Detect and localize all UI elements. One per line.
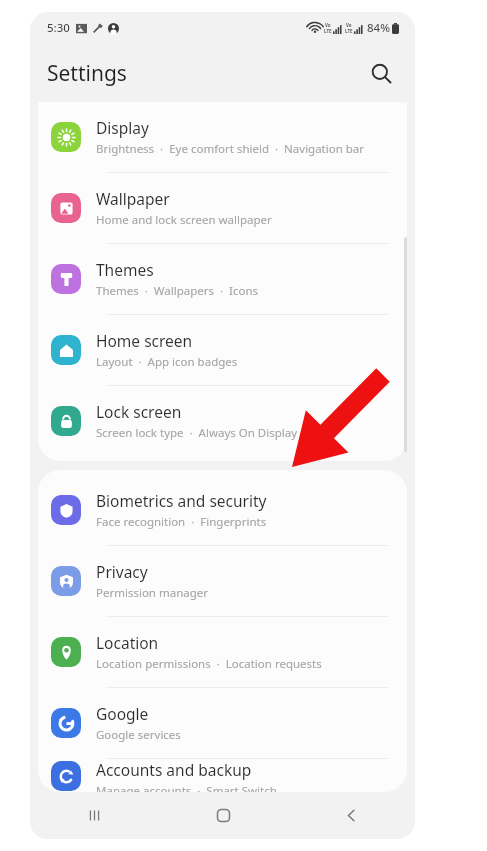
button[interactable]: Display bbox=[38, 102, 407, 172]
button[interactable]: Location bbox=[38, 617, 407, 687]
button[interactable]: Home screen bbox=[38, 315, 407, 385]
staticText: Location bbox=[96, 632, 159, 653]
staticText: Display bbox=[96, 117, 149, 138]
staticText: Privacy bbox=[96, 561, 148, 582]
button[interactable]: Back bbox=[287, 792, 415, 839]
staticText: Google bbox=[96, 703, 149, 724]
staticText: LTE bbox=[345, 28, 353, 34]
staticText: Manage accounts · Smart Switch bbox=[96, 783, 277, 792]
button[interactable]: Recents bbox=[30, 792, 159, 839]
staticText: Face recognition · Fingerprints bbox=[96, 514, 267, 530]
button[interactable]: Search bbox=[361, 53, 401, 93]
staticText: Home screen bbox=[96, 330, 193, 351]
staticText: Brightness · Eye comfort shield · Naviga… bbox=[96, 141, 365, 157]
staticText: Biometrics and security bbox=[96, 490, 267, 511]
staticText: Screen lock type · Always On Display bbox=[96, 425, 298, 441]
staticText: Themes bbox=[96, 259, 154, 280]
staticText: 5:30 bbox=[47, 20, 70, 36]
button[interactable]: Accounts and backup bbox=[38, 759, 407, 792]
staticText: Wallpaper bbox=[96, 188, 170, 209]
button[interactable]: Lock screen bbox=[38, 386, 407, 456]
staticText: Lock screen bbox=[96, 401, 182, 422]
staticText: 84% bbox=[367, 20, 390, 36]
button[interactable]: Themes bbox=[38, 244, 407, 314]
staticText: Vo bbox=[325, 22, 331, 28]
button[interactable]: Google bbox=[38, 688, 407, 758]
button[interactable]: Privacy bbox=[38, 546, 407, 616]
staticText: Home and lock screen wallpaper bbox=[96, 212, 272, 228]
staticText: Settings bbox=[47, 59, 127, 88]
staticText: Google services bbox=[96, 727, 181, 743]
button[interactable]: Biometrics and security bbox=[38, 475, 407, 545]
staticText: Layout · App icon badges bbox=[96, 354, 238, 370]
staticText: LTE bbox=[324, 28, 332, 34]
staticText: Themes · Wallpapers · Icons bbox=[96, 283, 258, 299]
button[interactable]: Wallpaper bbox=[38, 173, 407, 243]
staticText: Location permissions · Location requests bbox=[96, 656, 322, 672]
button[interactable]: Home bbox=[159, 792, 287, 839]
staticText: Permission manager bbox=[96, 585, 209, 601]
staticText: Vo bbox=[346, 22, 352, 28]
staticText: Accounts and backup bbox=[96, 759, 252, 780]
